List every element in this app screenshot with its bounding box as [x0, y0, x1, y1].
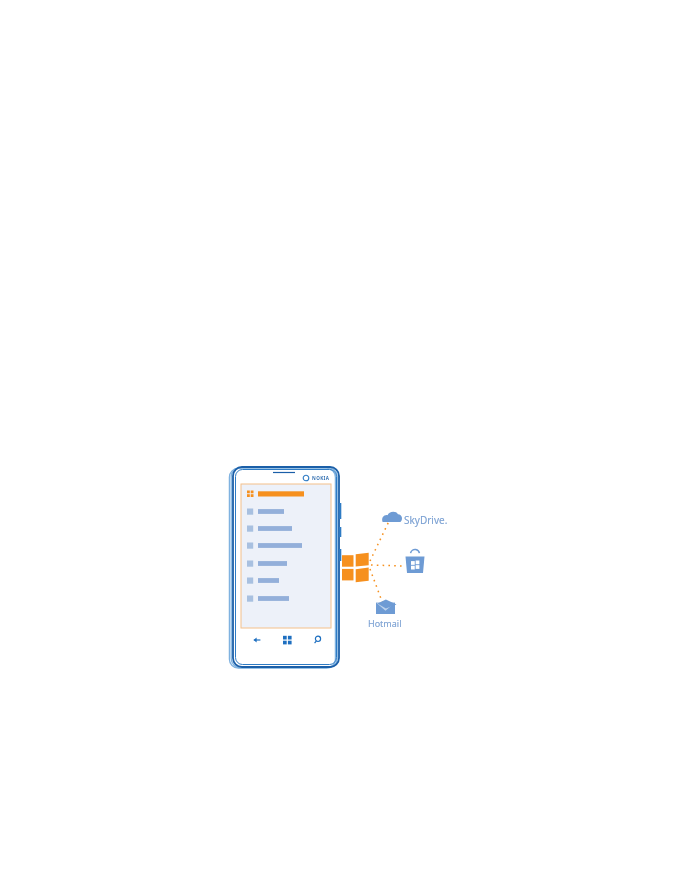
button[interactable]: Windows Phone sync diagram [0, 0, 680, 896]
